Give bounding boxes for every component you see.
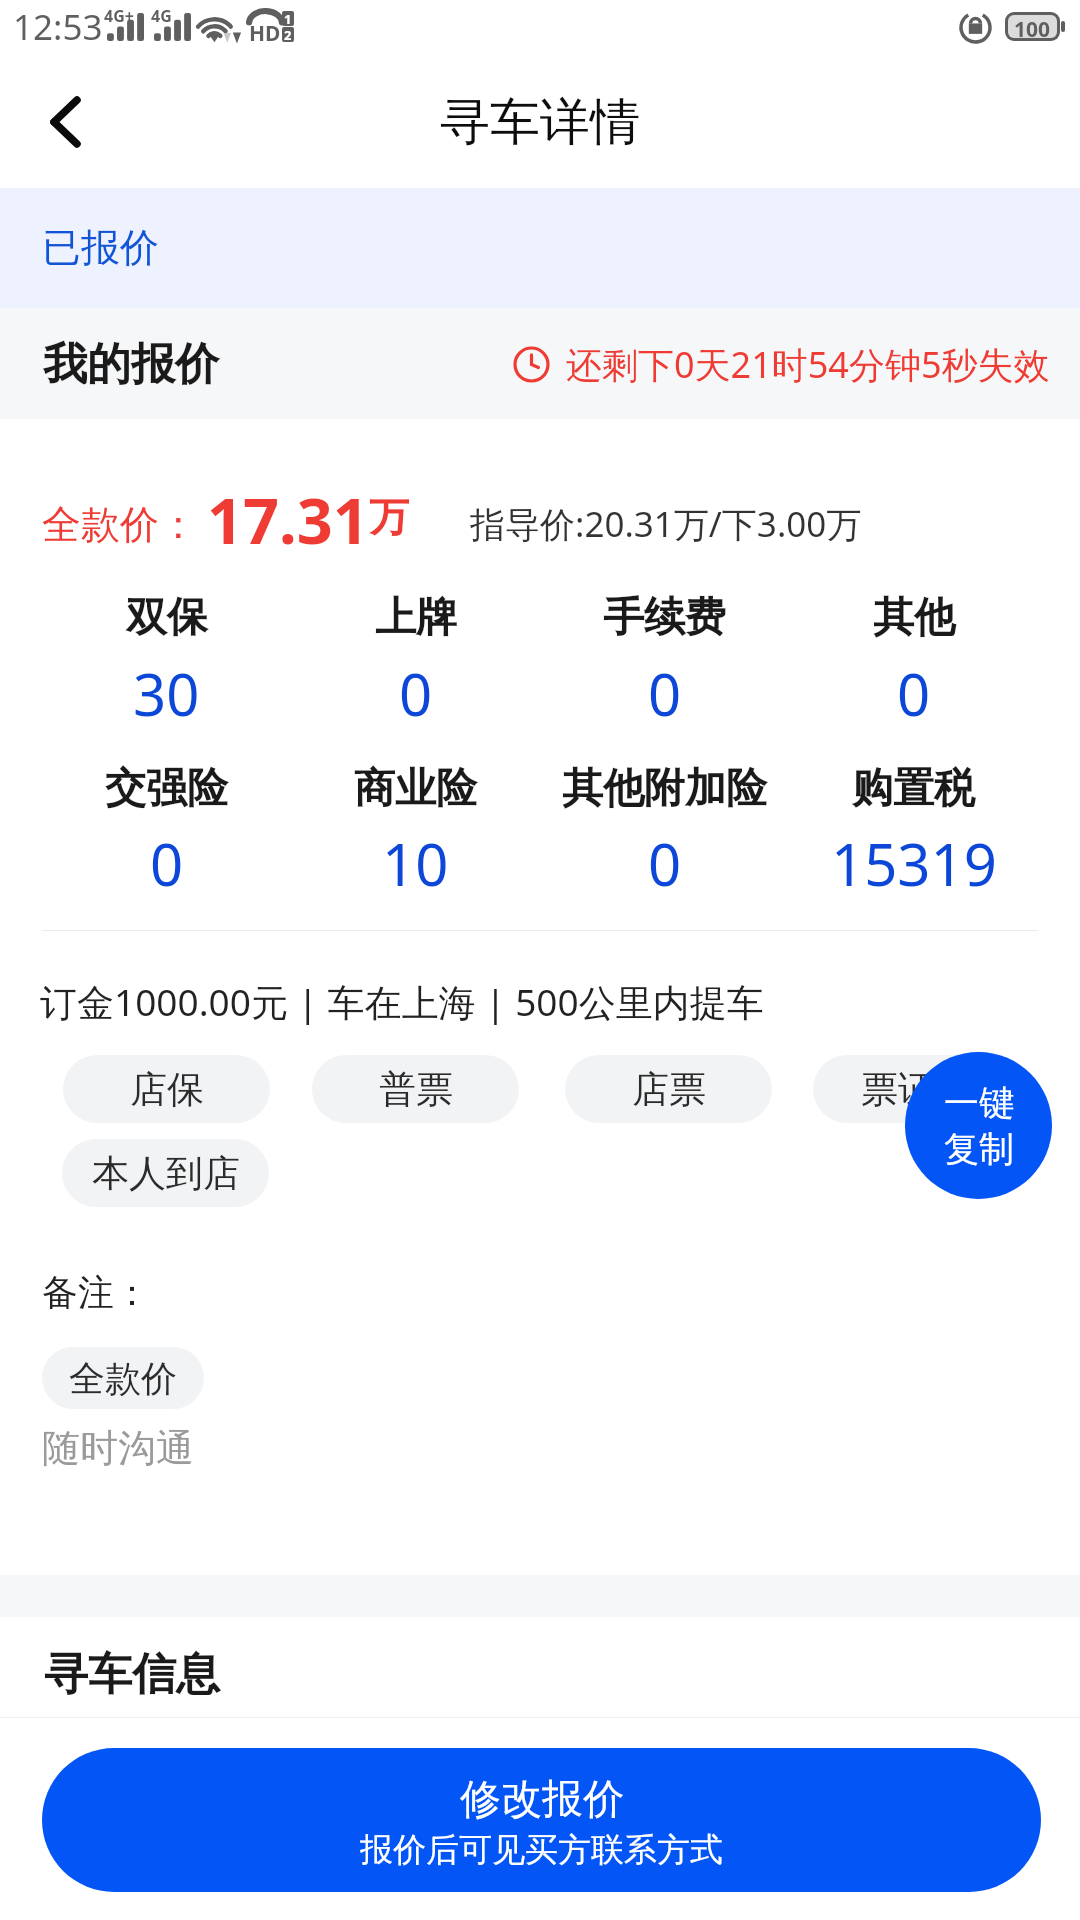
staticText: 其他 bbox=[873, 592, 955, 644]
staticText: 已报价 bbox=[42, 223, 159, 272]
staticText: HD bbox=[249, 19, 281, 48]
staticText: 店票 bbox=[632, 1066, 706, 1113]
staticText: 备注： bbox=[42, 1270, 150, 1315]
staticText: 票证照 bbox=[861, 1066, 972, 1113]
button[interactable]: 票证照 bbox=[813, 1055, 1020, 1123]
button[interactable]: 全款价 bbox=[42, 1347, 204, 1409]
staticText: 1 bbox=[284, 11, 292, 25]
staticText: 0 bbox=[648, 654, 682, 733]
button[interactable]: 普票 bbox=[312, 1055, 519, 1123]
staticText: 寻车详情 bbox=[440, 91, 640, 154]
staticText: 4G bbox=[151, 5, 172, 27]
staticText: 手续费 bbox=[603, 592, 726, 644]
staticText: 30 bbox=[133, 654, 200, 733]
button[interactable]: 一键 bbox=[905, 1052, 1052, 1199]
button[interactable]: 店保 bbox=[63, 1055, 270, 1123]
button[interactable]: 修改报价 bbox=[42, 1748, 1041, 1892]
staticText: 指导价:20.31万/下3.00万 bbox=[470, 500, 862, 548]
staticText: 4G+ bbox=[104, 5, 134, 27]
staticText: 0 bbox=[897, 654, 931, 733]
staticText: 一键 bbox=[944, 1081, 1014, 1125]
staticText: 0 bbox=[150, 824, 184, 903]
staticText: 2 bbox=[284, 27, 292, 41]
staticText: 双保 bbox=[126, 592, 208, 644]
staticText: 17.31 bbox=[207, 477, 369, 563]
staticText: 我的报价 bbox=[43, 337, 219, 392]
staticText: 万 bbox=[369, 492, 409, 542]
staticText: 15319 bbox=[831, 824, 997, 903]
staticText: 还剩下0天21时54分钟5秒失效 bbox=[566, 340, 1050, 389]
staticText: 上牌 bbox=[375, 592, 457, 644]
staticText: 普票 bbox=[379, 1066, 453, 1113]
staticText: 其他附加险 bbox=[562, 763, 767, 815]
staticText: 店保 bbox=[130, 1066, 204, 1113]
staticText: 100 bbox=[1014, 15, 1051, 38]
staticText: 修改报价 bbox=[460, 1774, 624, 1826]
staticText: 随时沟通 bbox=[42, 1424, 194, 1472]
button[interactable]: Back bbox=[15, 72, 115, 172]
staticText: 订金1000.00元 | 车在上海 | 500公里内提车 bbox=[40, 976, 764, 1027]
staticText: 商业险 bbox=[354, 763, 477, 815]
staticText: 全款价 bbox=[69, 1356, 177, 1401]
staticText: 12:53 bbox=[13, 3, 103, 51]
staticText: 报价后可见买方联系方式 bbox=[360, 1829, 723, 1871]
staticText: 本人到店 bbox=[92, 1150, 240, 1197]
staticText: 复制 bbox=[944, 1127, 1014, 1171]
staticText: 0 bbox=[648, 824, 682, 903]
staticText: 10 bbox=[382, 824, 449, 903]
staticText: 寻车信息 bbox=[44, 1647, 220, 1702]
staticText: 购置税 bbox=[852, 763, 975, 815]
staticText: 交强险 bbox=[105, 763, 228, 815]
button[interactable]: 本人到店 bbox=[62, 1139, 269, 1207]
button[interactable]: 店票 bbox=[565, 1055, 772, 1123]
staticText: 0 bbox=[399, 654, 433, 733]
staticText: 全款价： bbox=[42, 500, 198, 549]
